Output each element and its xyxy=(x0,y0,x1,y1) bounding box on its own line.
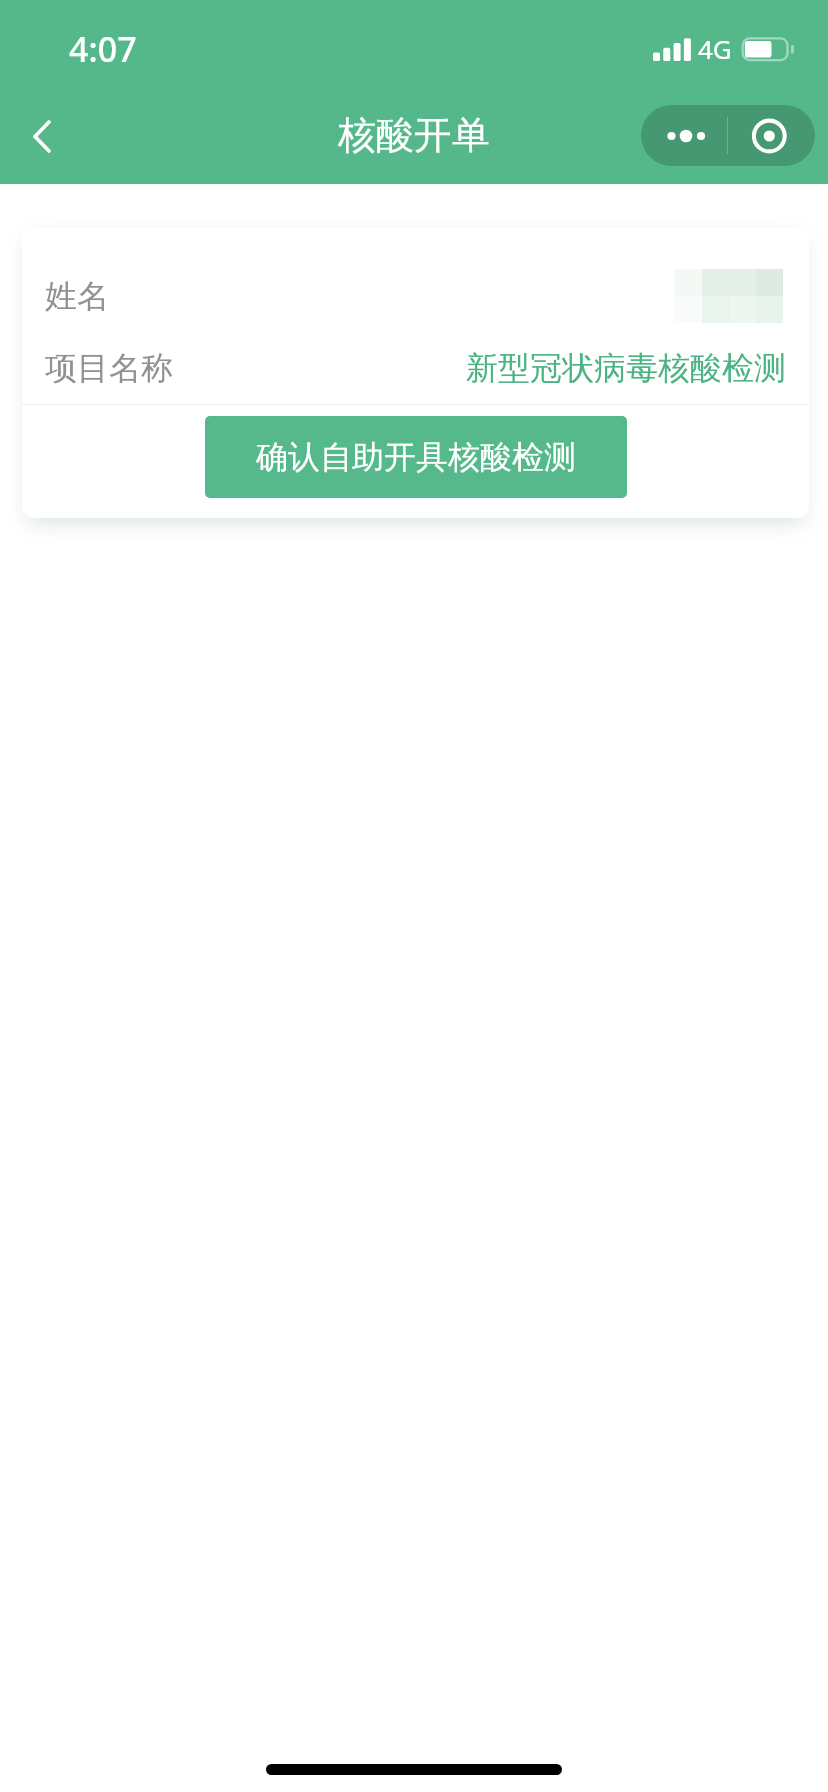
staticText: 4G xyxy=(698,31,732,66)
button[interactable]: More options xyxy=(641,105,728,166)
button[interactable]: 姓名 xyxy=(22,259,809,332)
button[interactable]: 确认自助开具核酸检测 xyxy=(205,416,627,498)
staticText: 新型冠状病毒核酸检测 xyxy=(466,348,786,388)
button[interactable]: Close mini program xyxy=(728,105,815,166)
staticText: 核酸开单 xyxy=(338,111,490,159)
other: Cellular signal strength xyxy=(653,37,691,61)
other: Battery xyxy=(740,36,796,64)
staticText: 确认自助开具核酸检测 xyxy=(256,437,576,477)
button[interactable]: Back xyxy=(8,102,76,170)
button[interactable]: 项目名称 xyxy=(22,332,809,404)
staticText: 项目名称 xyxy=(45,348,173,388)
staticText: 4:07 xyxy=(69,26,137,72)
staticText: 姓名 xyxy=(45,276,109,316)
